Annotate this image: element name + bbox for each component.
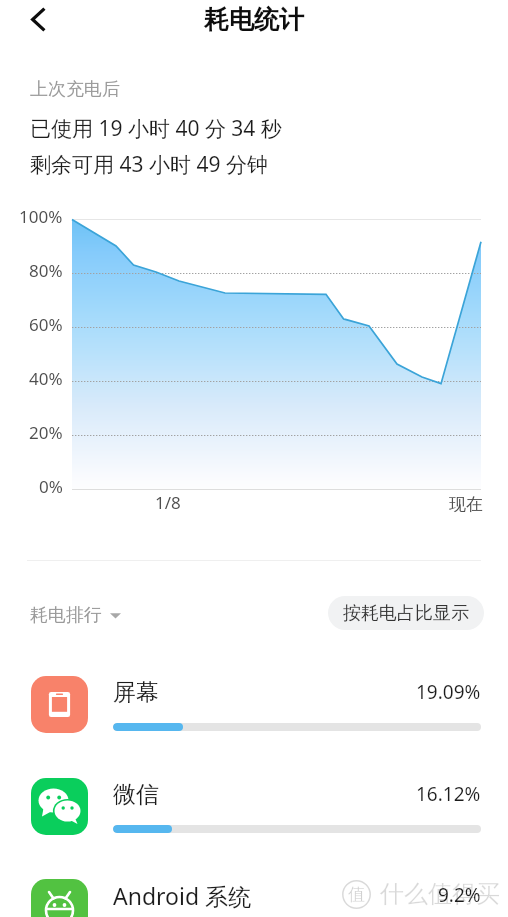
staticText: 耗电排行 bbox=[30, 604, 102, 627]
staticText: 100% bbox=[19, 205, 63, 228]
staticText: 19.09% bbox=[416, 679, 481, 705]
staticText: 微信 bbox=[113, 780, 159, 809]
button[interactable]: 微信 bbox=[27, 770, 485, 844]
button[interactable]: 屏幕 bbox=[27, 668, 485, 742]
button[interactable]: Back bbox=[19, 0, 57, 38]
staticText: 16.12% bbox=[416, 781, 481, 807]
staticText: 1/8 bbox=[155, 491, 181, 514]
button[interactable]: Android 系统 bbox=[27, 871, 485, 917]
button[interactable]: 耗电排行 bbox=[30, 602, 121, 629]
staticText: 已使用 19 小时 40 分 34 秒 bbox=[30, 114, 282, 143]
staticText: 屏幕 bbox=[113, 678, 159, 707]
staticText: 按耗电占比显示 bbox=[343, 602, 469, 625]
staticText: 耗电统计 bbox=[204, 4, 304, 35]
staticText: 上次充电后 bbox=[30, 78, 120, 101]
staticText: 20% bbox=[29, 421, 63, 444]
staticText: 什么值得买 bbox=[380, 879, 500, 909]
staticText: 9.2% bbox=[438, 882, 481, 908]
staticText: 剩余可用 43 小时 49 分钟 bbox=[30, 150, 268, 179]
staticText: 0% bbox=[39, 475, 63, 498]
staticText: 值 bbox=[348, 884, 365, 905]
staticText: 现在 bbox=[449, 494, 483, 515]
staticText: 60% bbox=[29, 313, 63, 336]
staticText: Android 系统 bbox=[113, 880, 252, 910]
staticText: 80% bbox=[29, 259, 63, 282]
staticText: 40% bbox=[29, 367, 63, 390]
button[interactable]: 按耗电占比显示 bbox=[328, 596, 484, 630]
